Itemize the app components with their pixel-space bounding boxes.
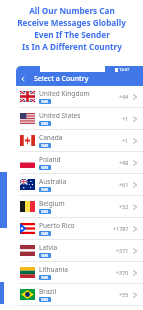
staticText: +32 (119, 203, 129, 210)
staticText: SMS (41, 231, 49, 236)
staticText: SMS (41, 187, 49, 192)
staticText: Canada (39, 133, 63, 142)
staticText: Lithuania (39, 265, 68, 274)
staticText: Latvia (39, 243, 58, 252)
staticText: SMS (41, 121, 49, 126)
staticText: Is In A Different Country (22, 41, 122, 52)
staticText: Select a Country (34, 74, 89, 84)
staticText: SMS (41, 297, 49, 302)
button[interactable]: Poland (16, 152, 143, 174)
staticText: United Kingdom (39, 89, 90, 98)
button[interactable]: Brazil (16, 284, 143, 306)
button[interactable]: Lithuania (16, 262, 143, 284)
staticText: United States (39, 111, 81, 120)
staticText: SMS (41, 253, 49, 258)
staticText: SMS (41, 143, 49, 148)
staticText: +48 (119, 159, 129, 166)
staticText: Brazil (39, 287, 57, 296)
button[interactable]: Canada (16, 130, 143, 152)
staticText: Belgium (39, 199, 65, 208)
staticText: Australia (39, 177, 67, 186)
button[interactable]: Australia (16, 174, 143, 196)
staticText: +1 (122, 137, 129, 144)
staticText: Puerto Rico (39, 221, 75, 230)
button[interactable]: Belgium (16, 196, 143, 218)
staticText: All Our Numbers Can (29, 5, 115, 16)
staticText: Receive Messages Globally (17, 17, 126, 28)
staticText: +55 (119, 291, 129, 298)
staticText: +44 (119, 93, 129, 100)
staticText: Poland (39, 155, 61, 164)
button[interactable]: Puerto Rico (16, 218, 143, 240)
staticText: 12:07 (119, 67, 130, 72)
button[interactable]: United States (16, 108, 143, 130)
button[interactable]: Back (16, 72, 30, 86)
staticText: SMS (41, 275, 49, 280)
staticText: +61 (119, 181, 129, 188)
staticText: +370 (116, 269, 129, 276)
staticText: SMS (41, 209, 49, 214)
staticText: +1787 (113, 225, 129, 232)
staticText: Even If The Sender (34, 29, 110, 40)
button[interactable]: Latvia (16, 240, 143, 262)
staticText: +371 (116, 247, 129, 254)
staticText: SMS (41, 99, 49, 104)
staticText: +1 (122, 115, 129, 122)
button[interactable]: United Kingdom (16, 86, 143, 108)
staticText: SMS (41, 165, 49, 170)
